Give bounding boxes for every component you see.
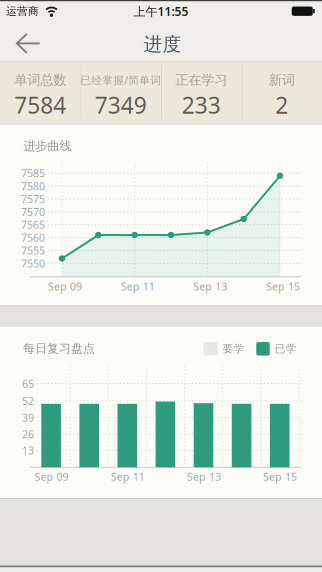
staticText: 26 [22,427,34,441]
staticText: 上午11:55 [133,3,188,19]
staticText: Sep 11 [121,279,155,293]
button[interactable]: 已学 [256,342,297,356]
staticText: 进度 [143,33,181,56]
staticText: 已学 [275,342,297,355]
staticText: Sep 13 [193,279,227,293]
staticText: 7550 [21,256,45,270]
staticText: 进步曲线 [23,139,71,153]
staticText: 2 [275,90,288,120]
staticText: Sep 15 [266,279,300,293]
staticText: 39 [22,410,34,425]
staticText: 7580 [21,179,45,193]
staticText: Sep 11 [111,469,145,484]
staticText: Sep 13 [187,469,221,484]
staticText: 运营商 [6,5,39,18]
staticText: 65 [22,376,34,391]
staticText: 要学 [222,342,244,355]
staticText: 7584 [14,90,66,120]
staticText: 7349 [95,90,147,120]
staticText: 233 [182,90,221,120]
staticText: 7570 [21,205,45,219]
button[interactable]: Back [3,29,47,57]
staticText: Sep 09 [34,469,68,484]
staticText: 每日复习盘点 [23,341,95,356]
staticText: 正在学习 [175,72,227,88]
staticText: 7575 [21,192,45,206]
staticText: 52 [22,394,34,408]
staticText: 7560 [21,230,45,245]
staticText: Sep 09 [48,279,82,293]
staticText: Sep 15 [263,469,297,484]
staticText: 单词总数 [14,72,66,88]
staticText: 新词 [269,72,295,88]
staticText: 13 [22,443,34,457]
staticText: 7555 [21,243,45,257]
button[interactable]: 要学 [203,342,244,356]
staticText: 7565 [21,218,45,232]
staticText: 已经掌握/简单词 [80,73,161,87]
staticText: 7585 [21,166,45,180]
